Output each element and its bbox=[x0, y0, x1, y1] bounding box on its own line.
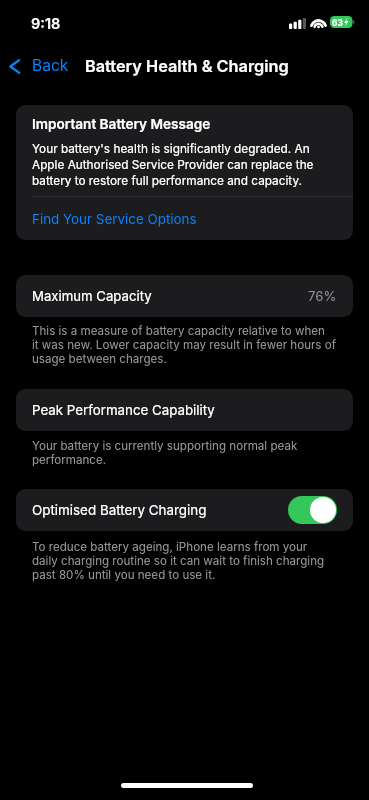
staticText: Your battery is currently supporting nor… bbox=[32, 439, 298, 467]
staticText: To reduce battery ageing, iPhone learns … bbox=[32, 540, 325, 582]
staticText: Back bbox=[32, 56, 69, 75]
button[interactable]: Optimised Battery Charging bbox=[288, 496, 337, 524]
button[interactable]: Back bbox=[4, 51, 74, 81]
staticText: 63 bbox=[332, 18, 343, 28]
button[interactable]: Peak Performance Capability bbox=[16, 389, 353, 431]
staticText: Optimised Battery Charging bbox=[32, 502, 207, 518]
staticText: Maximum Capacity bbox=[32, 288, 152, 304]
staticText: Your battery's health is significantly d… bbox=[32, 140, 314, 188]
staticText: Find Your Service Options bbox=[32, 211, 197, 227]
staticText: Peak Performance Capability bbox=[32, 402, 215, 418]
staticText: 76% bbox=[308, 288, 337, 304]
staticText: 9:18 bbox=[31, 15, 61, 32]
button[interactable]: Find Your Service Options bbox=[16, 197, 353, 239]
button[interactable]: Maximum Capacity bbox=[16, 275, 353, 317]
staticText: Important Battery Message bbox=[32, 116, 211, 132]
staticText: Battery Health & Charging bbox=[85, 56, 289, 76]
staticText: This is a measure of battery capacity re… bbox=[32, 324, 336, 366]
